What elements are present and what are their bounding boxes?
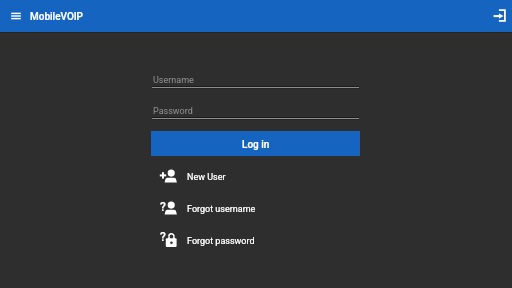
staticText: New User xyxy=(187,172,226,183)
staticText: Password xyxy=(153,106,193,117)
button[interactable]: Username xyxy=(151,70,360,89)
button[interactable]: New User xyxy=(151,161,360,192)
staticText: Username xyxy=(153,75,194,86)
button[interactable]: Open navigation menu xyxy=(7,7,25,25)
button[interactable]: ? xyxy=(151,193,360,224)
staticText: Log in xyxy=(242,139,270,151)
staticText: Forgot username xyxy=(187,204,256,215)
button[interactable]: Log in xyxy=(491,8,507,24)
staticText: ? xyxy=(160,200,166,214)
staticText: MobileVOIP xyxy=(30,11,83,23)
staticText: Forgot password xyxy=(187,236,255,247)
button[interactable]: Log in xyxy=(151,131,360,156)
button[interactable]: ? xyxy=(151,225,360,256)
button[interactable]: Password xyxy=(151,101,360,120)
staticText: ? xyxy=(160,230,166,244)
